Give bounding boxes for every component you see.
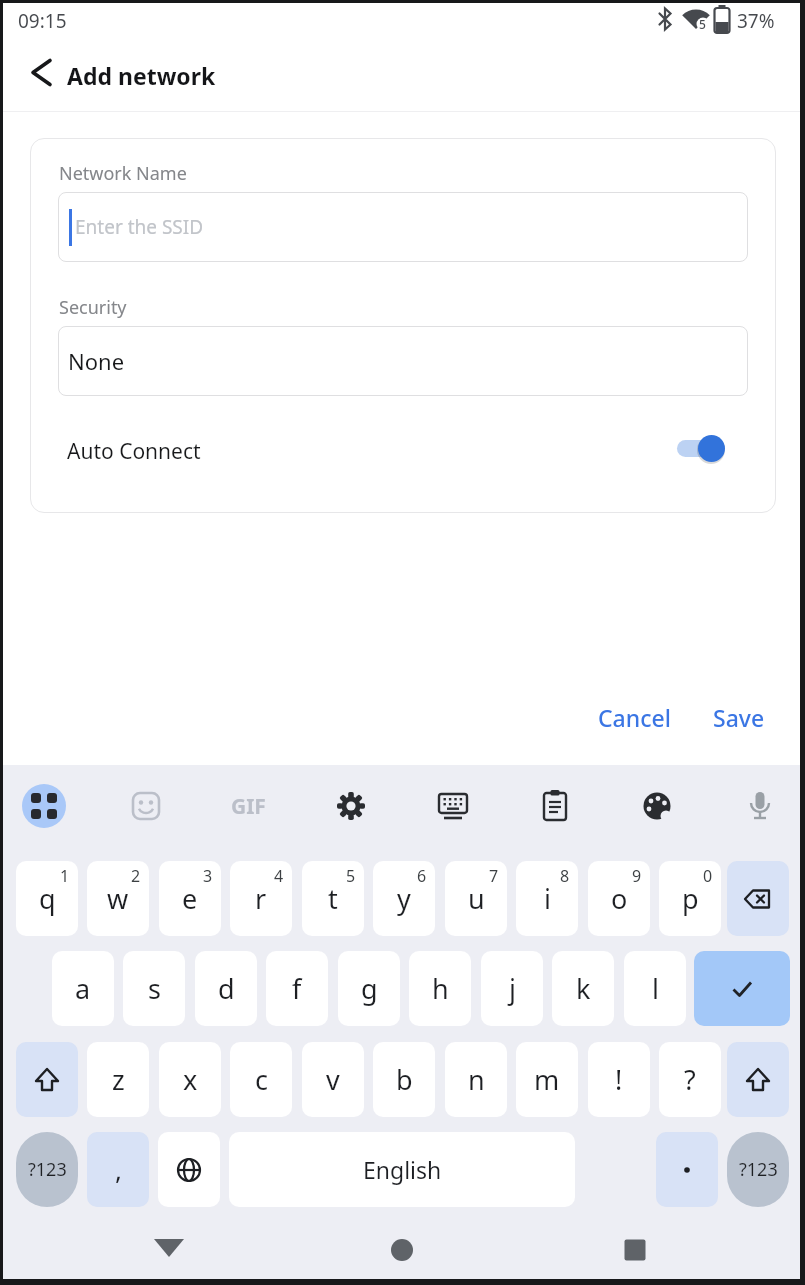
staticText: 1 bbox=[60, 865, 70, 887]
button[interactable] bbox=[727, 1042, 789, 1117]
button[interactable]: d bbox=[195, 951, 257, 1026]
staticText: None bbox=[68, 346, 125, 376]
button[interactable] bbox=[533, 784, 577, 828]
staticText: 7 bbox=[489, 865, 499, 887]
button[interactable]: English bbox=[229, 1132, 575, 1207]
button[interactable] bbox=[16, 1042, 78, 1117]
button[interactable]: n bbox=[445, 1042, 507, 1117]
button[interactable] bbox=[139, 1220, 199, 1280]
staticText: ?123 bbox=[28, 1157, 67, 1182]
staticText: 4 bbox=[274, 865, 284, 887]
staticText: w bbox=[107, 880, 129, 917]
button[interactable]: f bbox=[266, 951, 328, 1026]
staticText: 5 bbox=[699, 16, 706, 32]
button[interactable]: Enter the SSID bbox=[58, 192, 748, 262]
staticText: z bbox=[112, 1061, 125, 1098]
button[interactable]: Cancel bbox=[598, 702, 671, 733]
button[interactable] bbox=[372, 1220, 432, 1280]
button[interactable] bbox=[647, 433, 725, 463]
staticText: s bbox=[148, 970, 161, 1007]
staticText: g bbox=[361, 970, 378, 1007]
staticText: 09:15 bbox=[18, 8, 67, 34]
button[interactable]: x bbox=[159, 1042, 221, 1117]
staticText: Security bbox=[59, 295, 127, 320]
button[interactable]: v bbox=[302, 1042, 364, 1117]
button[interactable] bbox=[727, 861, 789, 936]
button[interactable] bbox=[656, 1132, 718, 1207]
staticText: o bbox=[611, 880, 628, 917]
button[interactable]: e bbox=[159, 861, 221, 936]
staticText: 5 bbox=[346, 865, 356, 887]
button[interactable]: k bbox=[552, 951, 614, 1026]
button[interactable]: o bbox=[588, 861, 650, 936]
staticText: 37% bbox=[737, 8, 775, 34]
staticText: v bbox=[326, 1061, 340, 1098]
staticText: GIF bbox=[231, 792, 266, 821]
staticText: m bbox=[534, 1061, 560, 1098]
staticText: 9 bbox=[632, 865, 642, 887]
button[interactable]: g bbox=[338, 951, 400, 1026]
button[interactable]: ?123 bbox=[16, 1132, 78, 1207]
staticText: 0 bbox=[703, 865, 713, 887]
staticText: 8 bbox=[560, 865, 570, 887]
staticText: d bbox=[218, 970, 235, 1007]
button[interactable]: l bbox=[624, 951, 686, 1026]
button[interactable]: q bbox=[16, 861, 78, 936]
staticText: p bbox=[682, 880, 699, 917]
staticText: e bbox=[182, 880, 198, 917]
button[interactable]: t bbox=[302, 861, 364, 936]
staticText: u bbox=[468, 880, 485, 917]
button[interactable]: GIF bbox=[226, 784, 270, 828]
staticText: a bbox=[75, 970, 91, 1007]
button[interactable] bbox=[431, 784, 475, 828]
button[interactable]: b bbox=[373, 1042, 435, 1117]
button[interactable]: m bbox=[516, 1042, 578, 1117]
button[interactable]: c bbox=[230, 1042, 292, 1117]
staticText: Add network bbox=[67, 60, 216, 91]
staticText: x bbox=[183, 1061, 198, 1098]
staticText: h bbox=[432, 970, 449, 1007]
button[interactable]: p bbox=[659, 861, 721, 936]
staticText: ! bbox=[615, 1061, 623, 1098]
button[interactable]: , bbox=[87, 1132, 149, 1207]
button[interactable] bbox=[22, 54, 62, 94]
staticText: Enter the SSID bbox=[75, 214, 204, 240]
button[interactable]: y bbox=[373, 861, 435, 936]
button[interactable] bbox=[158, 1132, 220, 1207]
button[interactable] bbox=[22, 784, 66, 828]
staticText: k bbox=[576, 970, 591, 1007]
button[interactable] bbox=[738, 784, 782, 828]
button[interactable]: r bbox=[230, 861, 292, 936]
staticText: English bbox=[363, 1154, 442, 1185]
button[interactable]: s bbox=[123, 951, 185, 1026]
button[interactable]: u bbox=[445, 861, 507, 936]
staticText: r bbox=[255, 880, 267, 917]
button[interactable] bbox=[635, 784, 679, 828]
button[interactable]: ?123 bbox=[727, 1132, 789, 1207]
button[interactable]: j bbox=[481, 951, 543, 1026]
staticText: , bbox=[115, 1152, 122, 1187]
button[interactable]: z bbox=[87, 1042, 149, 1117]
staticText: 6 bbox=[417, 865, 427, 887]
button[interactable] bbox=[605, 1220, 665, 1280]
button[interactable] bbox=[694, 951, 790, 1026]
staticText: 3 bbox=[203, 865, 213, 887]
button[interactable]: ! bbox=[588, 1042, 650, 1117]
button[interactable]: a bbox=[52, 951, 114, 1026]
button[interactable]: h bbox=[409, 951, 471, 1026]
button[interactable] bbox=[124, 784, 168, 828]
staticText: c bbox=[255, 1061, 268, 1098]
staticText: Auto Connect bbox=[67, 437, 201, 466]
staticText: ? bbox=[684, 1061, 696, 1098]
staticText: t bbox=[328, 880, 338, 917]
staticText: y bbox=[397, 880, 411, 917]
button[interactable]: Save bbox=[713, 702, 765, 733]
button[interactable]: w bbox=[87, 861, 149, 936]
button[interactable]: None bbox=[58, 326, 748, 396]
button[interactable] bbox=[329, 784, 373, 828]
button[interactable]: i bbox=[516, 861, 578, 936]
staticText: i bbox=[544, 880, 551, 917]
staticText: b bbox=[396, 1061, 413, 1098]
button[interactable]: ? bbox=[659, 1042, 721, 1117]
staticText: j bbox=[509, 970, 516, 1007]
